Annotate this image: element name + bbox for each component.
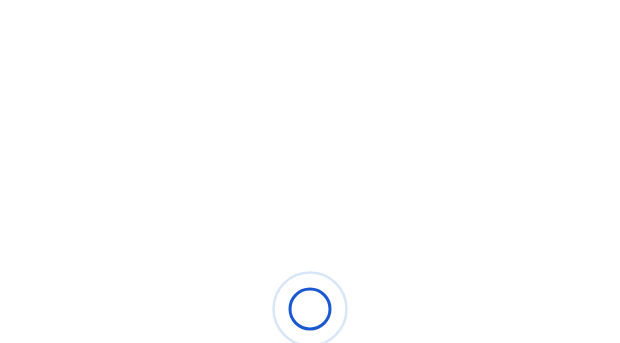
other: Loading: [270, 275, 350, 343]
